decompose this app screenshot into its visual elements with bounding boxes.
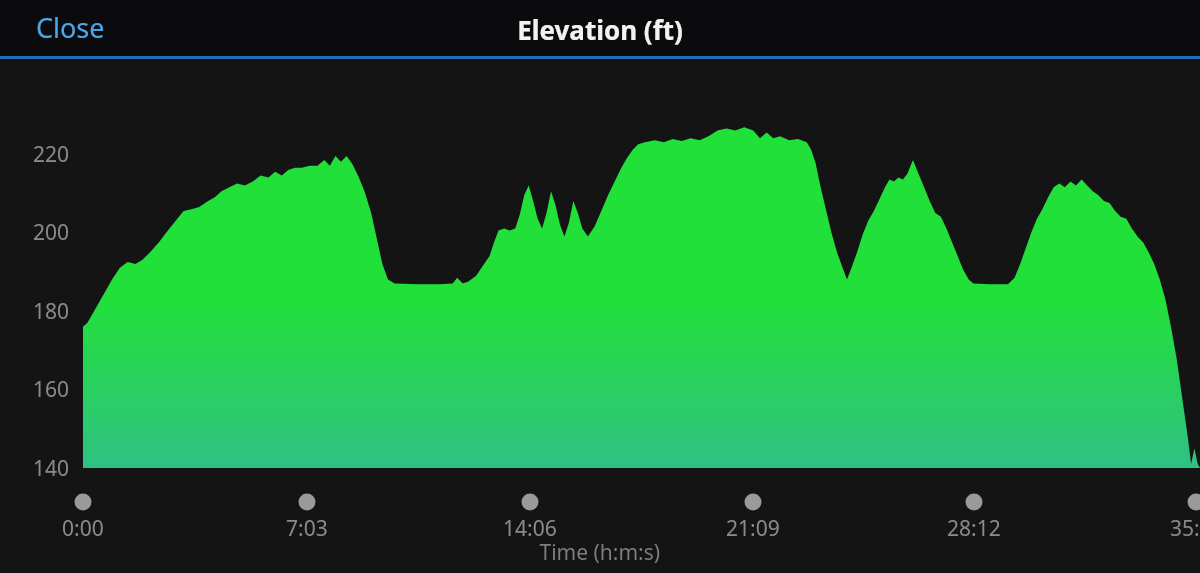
staticText: Elevation (ft) [517,12,683,47]
button[interactable]: Close [0,3,121,56]
